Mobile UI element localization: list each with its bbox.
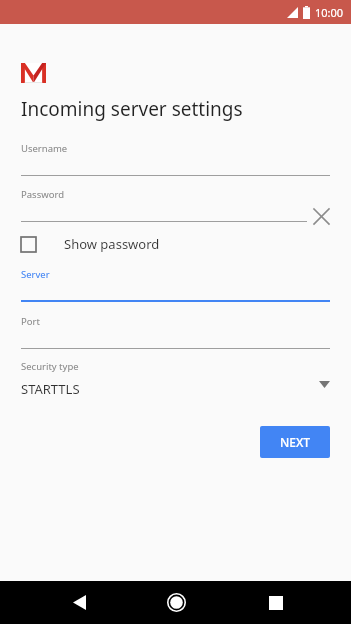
- staticText: Password: [21, 188, 64, 201]
- staticText: 10:00: [315, 5, 344, 20]
- button[interactable]: Security type: [0, 360, 351, 398]
- button[interactable]: Show password: [0, 231, 351, 257]
- button[interactable]: Password: [0, 188, 351, 222]
- staticText: Security type: [21, 360, 79, 373]
- staticText: STARTTLS: [21, 380, 80, 398]
- button[interactable]: Clear password: [305, 200, 337, 232]
- staticText: Incoming server settings: [21, 96, 243, 122]
- button[interactable]: Home: [154, 581, 198, 624]
- other: Open security type dropdown: [319, 381, 330, 388]
- staticText: Username: [21, 142, 68, 155]
- staticText: Port: [21, 315, 40, 328]
- staticText: NEXT: [280, 434, 311, 450]
- button[interactable]: Port: [0, 315, 351, 349]
- staticText: Show password: [64, 235, 160, 253]
- button[interactable]: Recent apps: [254, 581, 298, 624]
- button[interactable]: Server: [0, 268, 351, 302]
- button[interactable]: NEXT: [260, 426, 330, 458]
- button[interactable]: Username: [0, 142, 351, 176]
- staticText: Server: [21, 268, 50, 281]
- button[interactable]: Back: [57, 581, 101, 624]
